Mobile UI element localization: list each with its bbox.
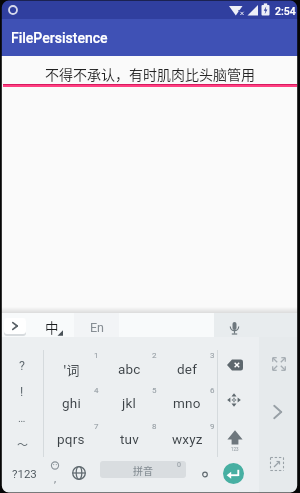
button[interactable] bbox=[217, 350, 259, 386]
staticText: 1 bbox=[94, 351, 99, 360]
staticText: abc bbox=[118, 361, 141, 377]
button[interactable] bbox=[100, 461, 186, 478]
button[interactable] bbox=[68, 458, 92, 493]
staticText: 7 bbox=[94, 422, 99, 431]
staticText: jkl bbox=[122, 395, 136, 411]
button[interactable] bbox=[4, 318, 26, 334]
button[interactable]: abc bbox=[103, 358, 155, 380]
staticText: 3 bbox=[210, 351, 215, 360]
staticText: pqrs bbox=[57, 431, 85, 447]
staticText: 2:54 bbox=[275, 5, 296, 17]
staticText: En bbox=[90, 320, 105, 335]
staticText: 0 bbox=[177, 461, 181, 469]
staticText: ?123 bbox=[12, 467, 37, 480]
staticText: 不得不承认，有时肌肉比头脑管用 bbox=[45, 64, 255, 84]
staticText: 123 bbox=[231, 447, 239, 452]
staticText: 中 bbox=[45, 317, 59, 337]
button[interactable]: 不得不承认，有时肌肉比头脑管用 bbox=[0, 64, 300, 84]
button[interactable]: ?123 bbox=[8, 462, 41, 484]
staticText: '词 bbox=[63, 360, 80, 379]
button[interactable]: ghi bbox=[45, 392, 97, 414]
button[interactable]: jkl bbox=[103, 392, 155, 414]
button[interactable]: pqrs bbox=[45, 428, 97, 450]
staticText: … bbox=[18, 412, 26, 425]
staticText: mno bbox=[173, 395, 201, 411]
button[interactable] bbox=[259, 345, 300, 385]
staticText: 2 bbox=[152, 351, 157, 360]
staticText: 9 bbox=[210, 422, 215, 431]
button[interactable] bbox=[217, 417, 259, 457]
button[interactable] bbox=[217, 386, 259, 417]
staticText: def bbox=[177, 361, 198, 377]
button[interactable] bbox=[259, 445, 300, 485]
staticText: ! bbox=[20, 384, 24, 399]
button[interactable]: ～ bbox=[8, 433, 36, 455]
staticText: , bbox=[54, 472, 57, 484]
button[interactable]: '词 bbox=[45, 358, 97, 380]
button[interactable] bbox=[195, 458, 217, 493]
button[interactable]: mno bbox=[161, 392, 213, 414]
button[interactable]: def bbox=[161, 358, 213, 380]
button[interactable]: tuv bbox=[103, 428, 155, 450]
staticText: tuv bbox=[120, 431, 139, 447]
staticText: wxyz bbox=[172, 431, 203, 447]
staticText: 8 bbox=[152, 422, 157, 431]
staticText: FilePersistence bbox=[11, 30, 108, 46]
button[interactable] bbox=[223, 463, 244, 484]
button[interactable]: … bbox=[8, 407, 36, 429]
button[interactable]: wxyz bbox=[161, 428, 213, 450]
staticText: 6 bbox=[210, 386, 215, 395]
button[interactable] bbox=[44, 458, 68, 493]
staticText: ～ bbox=[17, 436, 28, 452]
button[interactable]: ? bbox=[8, 354, 36, 376]
staticText: 拼音 bbox=[133, 463, 153, 477]
staticText: ? bbox=[19, 358, 25, 373]
button[interactable]: ! bbox=[8, 380, 36, 402]
button[interactable] bbox=[214, 313, 259, 337]
button[interactable] bbox=[259, 393, 300, 433]
button[interactable]: 中 bbox=[39, 316, 65, 338]
staticText: 5 bbox=[152, 386, 157, 395]
staticText: ghi bbox=[62, 395, 81, 411]
staticText: 4 bbox=[94, 386, 99, 395]
button[interactable]: En bbox=[84, 316, 110, 338]
